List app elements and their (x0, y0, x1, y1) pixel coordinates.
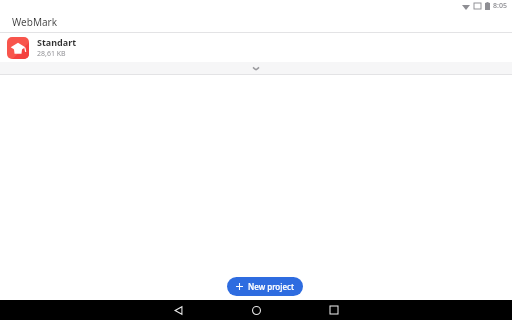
button[interactable]: Back (152, 300, 204, 320)
button[interactable]: Home (230, 300, 282, 320)
button[interactable]: Expand (0, 62, 512, 74)
staticText: 28,61 KB (37, 49, 66, 59)
button[interactable]: New project (227, 277, 303, 296)
staticText: New project (248, 281, 294, 292)
other: Project icon (7, 37, 29, 59)
button[interactable]: Recents (308, 300, 360, 320)
staticText: Standart (37, 36, 77, 48)
staticText: WebMark (12, 15, 58, 29)
button[interactable]: Project icon (0, 33, 512, 62)
staticText: 8:05 (493, 1, 507, 11)
